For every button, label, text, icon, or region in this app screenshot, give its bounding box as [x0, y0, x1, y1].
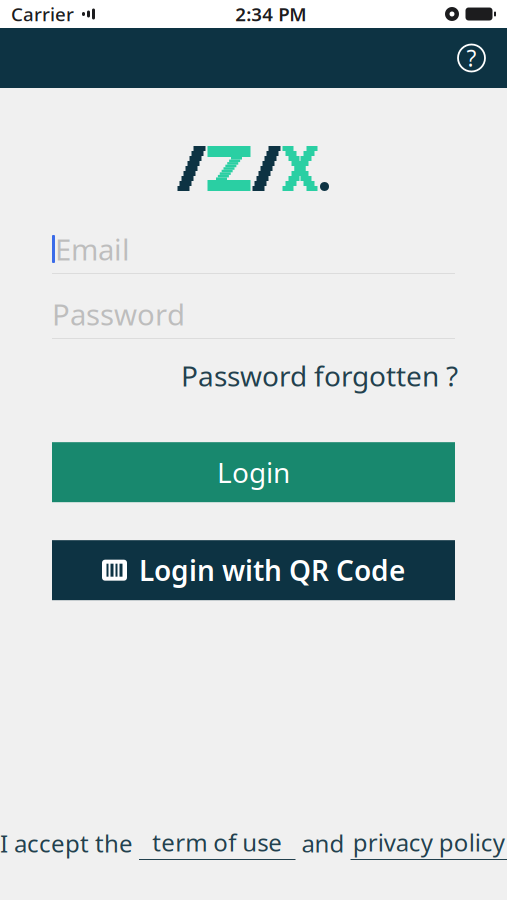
staticText: Password forgotten ?	[181, 357, 458, 394]
staticText: 2:34 PM	[235, 2, 306, 26]
staticText: and	[295, 827, 350, 859]
staticText: term of use	[152, 826, 282, 858]
staticText: I accept the	[0, 827, 139, 859]
button[interactable]: Login with QR Code	[52, 540, 455, 600]
staticText: Login	[217, 454, 290, 491]
staticText: privacy policy	[353, 826, 505, 858]
button[interactable]: term of use	[139, 826, 295, 860]
staticText: Login with QR Code	[139, 552, 405, 589]
staticText: Email	[55, 229, 130, 268]
button[interactable]: Password forgotten ?	[181, 351, 458, 400]
button[interactable]: privacy policy	[350, 826, 507, 860]
button[interactable]: Login	[52, 442, 455, 502]
button[interactable]: Help	[449, 35, 494, 80]
staticText: ?	[466, 43, 476, 73]
staticText: Password	[52, 294, 185, 333]
staticText: Carrier	[11, 2, 74, 26]
